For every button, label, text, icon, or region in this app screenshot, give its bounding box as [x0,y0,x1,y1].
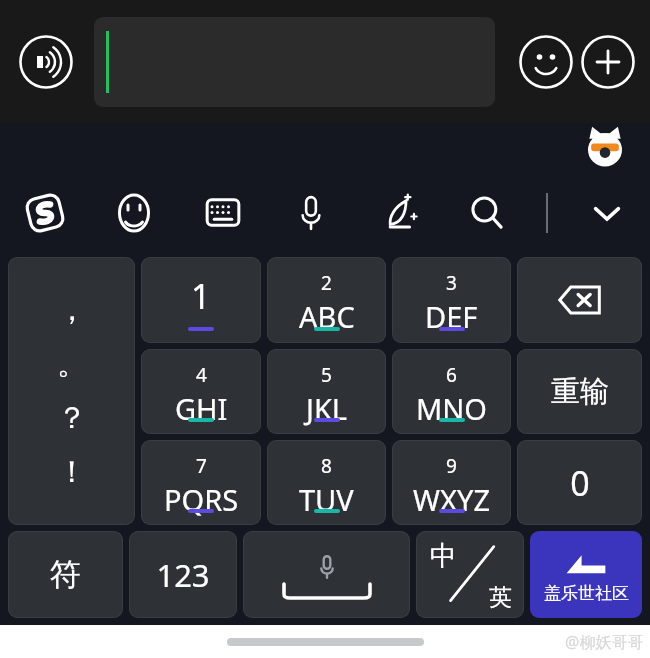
button[interactable]: Voice input [282,184,340,242]
button[interactable]: Punctuation [8,257,135,525]
button[interactable]: 3 DEF [392,257,511,343]
button[interactable]: Voice message [18,34,74,90]
button[interactable]: Search [458,184,516,242]
staticText: 符 [50,555,81,594]
button[interactable]: 重输 [517,349,642,434]
staticText: ， [57,291,87,329]
button[interactable]: 盖乐世社区 [530,531,642,618]
staticText: 5 [321,362,332,388]
staticText: @柳妖哥哥 [565,631,644,653]
button[interactable]: 中英切换 [416,531,524,618]
staticText: GHI [175,389,228,428]
staticText: DEF [425,297,478,336]
button[interactable]: 6 MNO [392,349,511,434]
button[interactable]: Sogou input [16,184,74,242]
staticText: ！ [57,453,87,491]
staticText: 6 [446,362,457,388]
button[interactable]: Keyboard layout [194,184,252,242]
staticText: ABC [299,297,355,336]
staticText: WXYZ [413,480,490,519]
staticText: 8 [321,453,332,479]
button[interactable]: Emoji [518,34,574,90]
button[interactable]: 7 PQRS [141,440,261,525]
staticText: JKL [306,389,348,428]
button[interactable]: Handwriting [370,184,428,242]
button[interactable]: Add attachment [580,34,636,90]
button[interactable]: 8 TUV [267,440,386,525]
staticText: 123 [156,554,210,596]
button[interactable]: Hide keyboard [578,184,636,242]
button[interactable]: 123 [129,531,237,618]
staticText: 7 [196,453,207,479]
staticText: 盖乐世社区 [544,583,629,604]
staticText: 重输 [551,373,609,410]
staticText: 3 [446,270,457,296]
staticText: 9 [446,453,457,479]
staticText: PQRS [164,480,239,519]
button[interactable]: Mascot [582,125,628,171]
button[interactable]: 符 [8,531,123,618]
button[interactable]: 5 JKL [267,349,386,434]
staticText: TUV [299,480,354,519]
staticText: 2 [321,270,332,296]
button[interactable]: 2 ABC [267,257,386,343]
staticText: 1 [191,273,211,319]
button[interactable]: Backspace [517,257,642,343]
staticText: 中 [430,539,457,573]
button[interactable]: 0 [517,440,642,525]
button[interactable]: Emoji panel [105,184,163,242]
button[interactable] [94,17,495,107]
staticText: 0 [570,460,590,506]
staticText: 。 [57,345,87,383]
button[interactable]: 9 WXYZ [392,440,511,525]
button[interactable]: Space [243,531,410,618]
staticText: 4 [196,362,207,388]
button[interactable]: 1 [141,257,261,343]
staticText: 英 [489,583,512,612]
button[interactable]: 4 GHI [141,349,261,434]
staticText: ？ [57,399,87,437]
staticText: MNO [416,389,487,428]
